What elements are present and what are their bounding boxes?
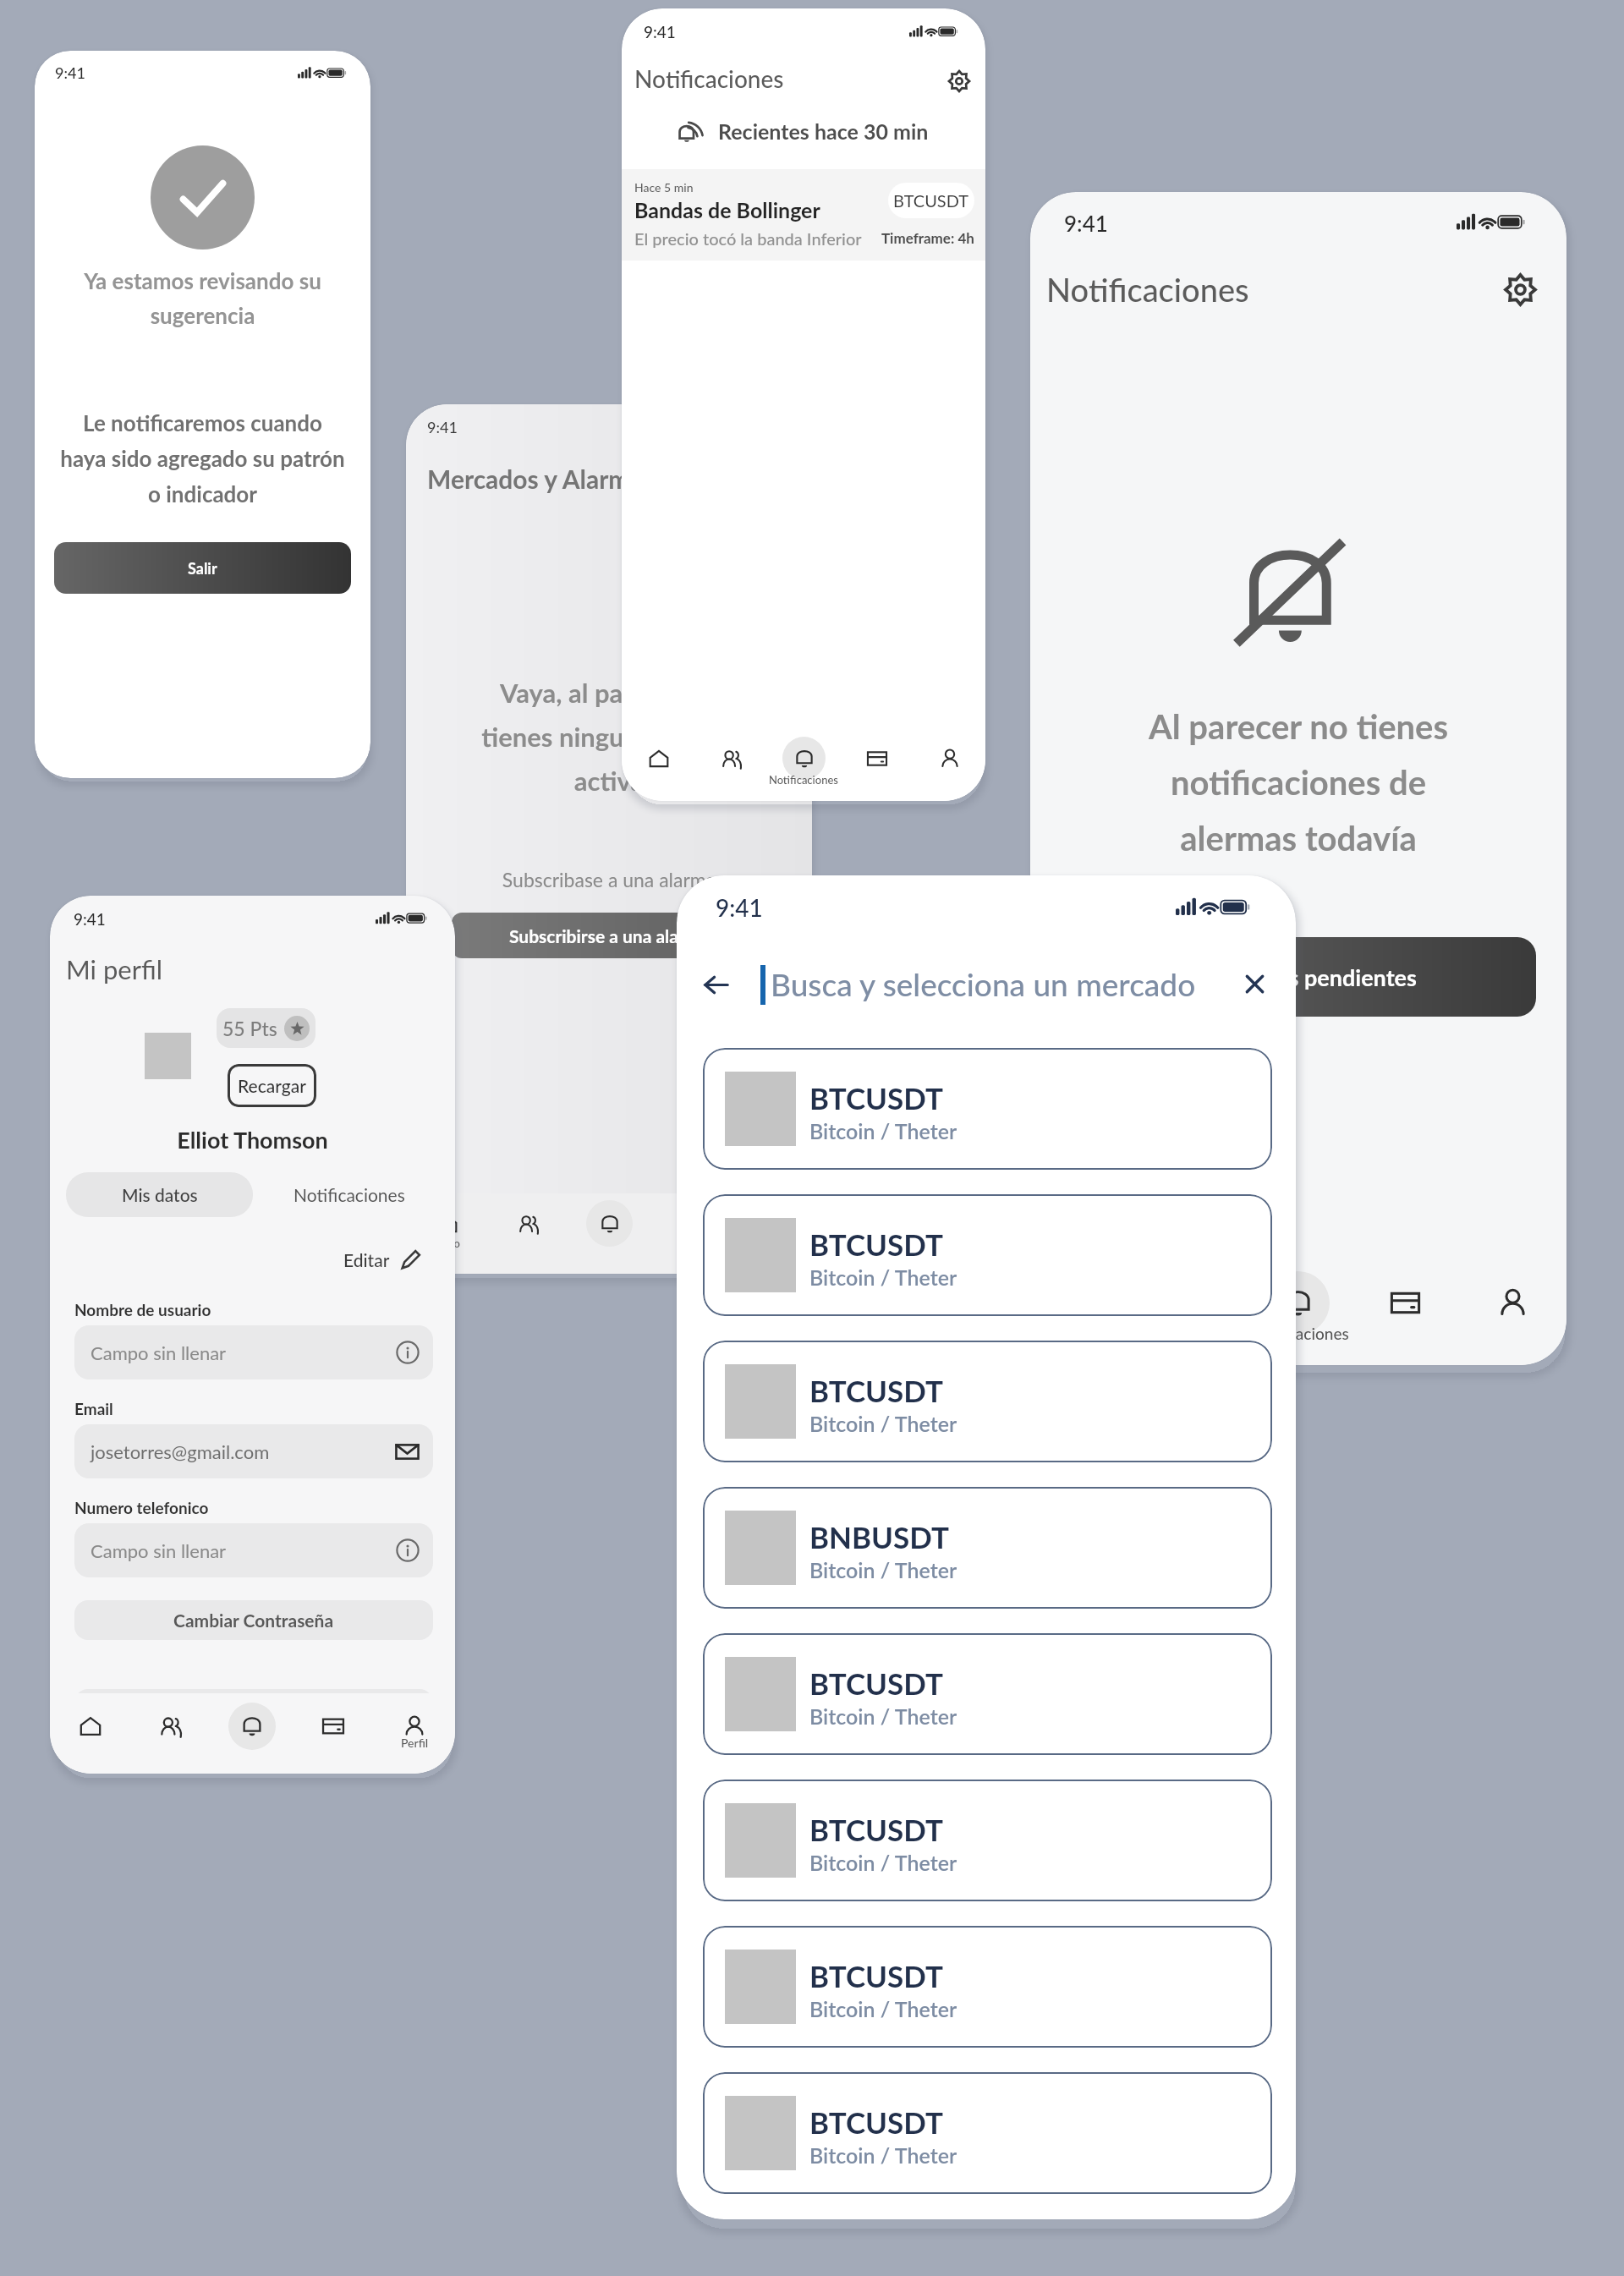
- staticText: Subscribase a una alarma: [406, 868, 812, 891]
- staticText: BNBUSDT: [809, 1519, 949, 1555]
- staticText: Campo sin llenar: [91, 1539, 227, 1561]
- staticText: Recargar: [238, 1075, 306, 1096]
- staticText: BTCUSDT: [809, 1226, 944, 1262]
- button[interactable]: Notificaciones: [211, 1693, 293, 1774]
- button[interactable]: josetorres@gmail.com: [74, 1424, 433, 1478]
- staticText: 9:41: [1064, 210, 1108, 236]
- staticText: Vaya, al parecer no tienes ninguna alarm…: [413, 677, 805, 796]
- staticText: Editar: [343, 1249, 390, 1270]
- button[interactable]: BTCUSDT: [703, 1926, 1272, 2048]
- button[interactable]: Tarjeta: [293, 1693, 374, 1774]
- button[interactable]: BNBUSDT: [703, 1487, 1272, 1609]
- button[interactable]: Perfil: [374, 1693, 455, 1774]
- staticText: BTCUSDT: [809, 1958, 944, 1994]
- button[interactable]: Notificaciones: [568, 1193, 650, 1274]
- staticText: Ya estamos revisando su sugerencia: [43, 267, 362, 328]
- button[interactable]: Comunidad: [1137, 1260, 1244, 1365]
- staticText: Le notificaremos cuando haya sido agrega…: [38, 409, 367, 507]
- button[interactable]: Cerrar: [1233, 963, 1276, 1005]
- staticText: BTCUSDT: [809, 1665, 944, 1701]
- staticText: 9:41: [427, 418, 458, 436]
- button[interactable]: Inicio: [50, 1693, 130, 1774]
- staticText: Bitcoin / Theter: [809, 1850, 957, 1875]
- staticText: Salir: [188, 559, 217, 578]
- staticText: Mercados y Alarmas: [427, 463, 654, 494]
- staticText: Cambiar Contraseña: [173, 1610, 334, 1631]
- button[interactable]: Inicio: [406, 1193, 487, 1274]
- staticText: Nombre de usuario: [74, 1300, 211, 1319]
- staticText: Mis datos: [122, 1184, 198, 1205]
- staticText: Inicio: [434, 1237, 460, 1250]
- staticText: Ver alarmas pendientes: [1181, 963, 1417, 990]
- button[interactable]: Cambiar Contraseña: [74, 1600, 433, 1640]
- button[interactable]: Tarjeta: [1352, 1260, 1459, 1365]
- staticText: Subscribirse a una alarma: [509, 925, 710, 946]
- button[interactable]: Subscribirse a una alarma: [452, 913, 766, 958]
- staticText: Email: [74, 1399, 113, 1418]
- staticText: 9:41: [716, 893, 763, 922]
- staticText: Elliot Thomson: [50, 1126, 455, 1153]
- button[interactable]: BTCUSDT: [703, 1048, 1272, 1170]
- staticText: 55 Pts: [222, 1017, 277, 1040]
- staticText: BTCUSDT: [809, 1080, 944, 1116]
- button[interactable]: BTCUSDT: [703, 2072, 1272, 2194]
- button[interactable]: Recargar: [228, 1064, 316, 1107]
- button[interactable]: BTCUSDT: [703, 1633, 1272, 1755]
- staticText: Notificaciones: [634, 64, 784, 93]
- button[interactable]: Notificaciones: [260, 1172, 439, 1217]
- staticText: Perfil: [401, 1736, 429, 1750]
- staticText: BTCUSDT: [809, 1373, 944, 1408]
- staticText: Numero telefonico: [74, 1498, 209, 1517]
- staticText: Recientes hace 30 min: [718, 118, 929, 144]
- button[interactable]: Salir: [54, 542, 351, 594]
- staticText: Busca y selecciona un mercado: [771, 965, 1196, 1002]
- button[interactable]: Perfil: [731, 1193, 812, 1274]
- staticText: Timeframe: 4h: [881, 229, 974, 246]
- button[interactable]: Editar: [304, 1242, 422, 1276]
- staticText: Bitcoin / Theter: [809, 1557, 957, 1582]
- staticText: Bitcoin / Theter: [809, 2142, 957, 2168]
- button[interactable]: Notificaciones: [767, 731, 840, 801]
- button[interactable]: [74, 1689, 433, 1729]
- button[interactable]: Mis datos: [66, 1172, 253, 1217]
- button[interactable]: Tarjeta: [650, 1193, 731, 1274]
- button[interactable]: Perfil: [913, 731, 985, 801]
- staticText: Bitcoin / Theter: [809, 1118, 957, 1143]
- button[interactable]: Configuración: [941, 63, 977, 99]
- staticText: Notificaciones: [769, 773, 838, 787]
- staticText: Notificaciones: [1248, 1324, 1349, 1343]
- button[interactable]: Comunidad: [130, 1693, 211, 1774]
- button[interactable]: Notificaciones: [1244, 1260, 1352, 1365]
- button[interactable]: Atrás: [694, 963, 738, 1006]
- staticText: 9:41: [55, 63, 85, 82]
- staticText: 9:41: [74, 909, 106, 929]
- button[interactable]: Perfil: [1459, 1260, 1566, 1365]
- button[interactable]: Configuración: [1495, 265, 1544, 314]
- staticText: Notificaciones: [1046, 270, 1249, 309]
- staticText: josetorres@gmail.com: [91, 1440, 270, 1462]
- button[interactable]: BTCUSDT: [703, 1341, 1272, 1462]
- button[interactable]: Inicio: [622, 731, 694, 801]
- button[interactable]: Ver alarmas pendientes: [1061, 937, 1536, 1017]
- button[interactable]: BTCUSDT: [703, 1194, 1272, 1316]
- button[interactable]: Hace 5 min: [622, 169, 985, 261]
- staticText: Bitcoin / Theter: [809, 1264, 957, 1290]
- button[interactable]: Tarjeta: [840, 731, 913, 801]
- button[interactable]: Campo sin llenar: [74, 1523, 433, 1577]
- staticText: BTCUSDT: [809, 2104, 944, 2140]
- staticText: BTCUSDT: [809, 1812, 944, 1847]
- button[interactable]: Inicio: [1030, 1260, 1137, 1365]
- button[interactable]: Comunidad: [694, 731, 767, 801]
- staticText: BTCUSDT: [893, 190, 969, 211]
- staticText: Notificaciones: [294, 1184, 405, 1205]
- staticText: Mi perfil: [66, 953, 163, 984]
- staticText: Hace 5 min: [634, 180, 694, 195]
- staticText: El precio tocó la banda Inferior: [634, 228, 862, 249]
- button[interactable]: BTCUSDT: [703, 1780, 1272, 1901]
- button[interactable]: Comunidad: [487, 1193, 568, 1274]
- staticText: Bitcoin / Theter: [809, 1411, 957, 1436]
- staticText: Bitcoin / Theter: [809, 1996, 957, 2021]
- button[interactable]: Campo sin llenar: [74, 1325, 433, 1379]
- staticText: Bitcoin / Theter: [809, 1703, 957, 1729]
- staticText: Campo sin llenar: [91, 1341, 227, 1363]
